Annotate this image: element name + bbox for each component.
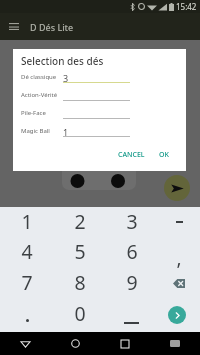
- staticText: 1: [63, 126, 69, 138]
- staticText: 9: [126, 269, 138, 296]
- staticText: 3: [126, 208, 138, 235]
- button[interactable]: [105, 299, 158, 330]
- button[interactable]: [158, 207, 200, 237]
- staticText: 2: [74, 208, 86, 235]
- staticText: 1: [21, 208, 33, 235]
- button[interactable]: 2: [54, 207, 105, 237]
- staticText: Magic Ball: [21, 127, 50, 135]
- staticText: 0: [74, 300, 86, 327]
- button[interactable]: Switch keyboard: [150, 332, 200, 355]
- staticText: Pile-Face: [21, 109, 46, 117]
- button[interactable]: Recents: [100, 332, 150, 355]
- staticText: 3: [63, 72, 69, 84]
- staticText: 5: [74, 238, 86, 265]
- button[interactable]: 9: [105, 268, 158, 299]
- button[interactable]: 0: [54, 299, 105, 330]
- button[interactable]: 5: [54, 237, 105, 268]
- button[interactable]: 7: [0, 268, 54, 299]
- button[interactable]: Home: [50, 332, 100, 355]
- button[interactable]: Delete: [158, 268, 200, 299]
- button[interactable]: Enter: [158, 299, 200, 330]
- staticText: 8: [74, 269, 86, 296]
- staticText: D Dés Lite: [30, 21, 74, 33]
- button[interactable]: CANCEL: [114, 147, 149, 163]
- staticText: 15:42: [176, 1, 197, 12]
- staticText: 6: [126, 238, 138, 265]
- button[interactable]: Back: [0, 332, 50, 355]
- button[interactable]: 8: [54, 268, 105, 299]
- button[interactable]: OK: [155, 147, 173, 163]
- staticText: ,: [176, 245, 182, 271]
- button[interactable]: Menu: [5, 18, 22, 35]
- button[interactable]: 4: [0, 237, 54, 268]
- staticText: CANCEL: [118, 150, 145, 160]
- staticText: Action-Vérité: [21, 91, 58, 99]
- staticText: 7: [21, 269, 33, 296]
- button[interactable]: 1: [0, 207, 54, 237]
- button[interactable]: ,: [158, 237, 200, 268]
- button[interactable]: [0, 299, 54, 330]
- other: Delete: [173, 279, 185, 288]
- staticText: Dé classique: [21, 73, 57, 81]
- button[interactable]: 3: [105, 207, 158, 237]
- other: Enter: [168, 306, 186, 324]
- button[interactable]: 6: [105, 237, 158, 268]
- staticText: Selection des dés: [21, 54, 104, 68]
- button[interactable]: Roll dice: [164, 175, 190, 201]
- staticText: OK: [159, 150, 169, 160]
- staticText: 4: [21, 238, 33, 265]
